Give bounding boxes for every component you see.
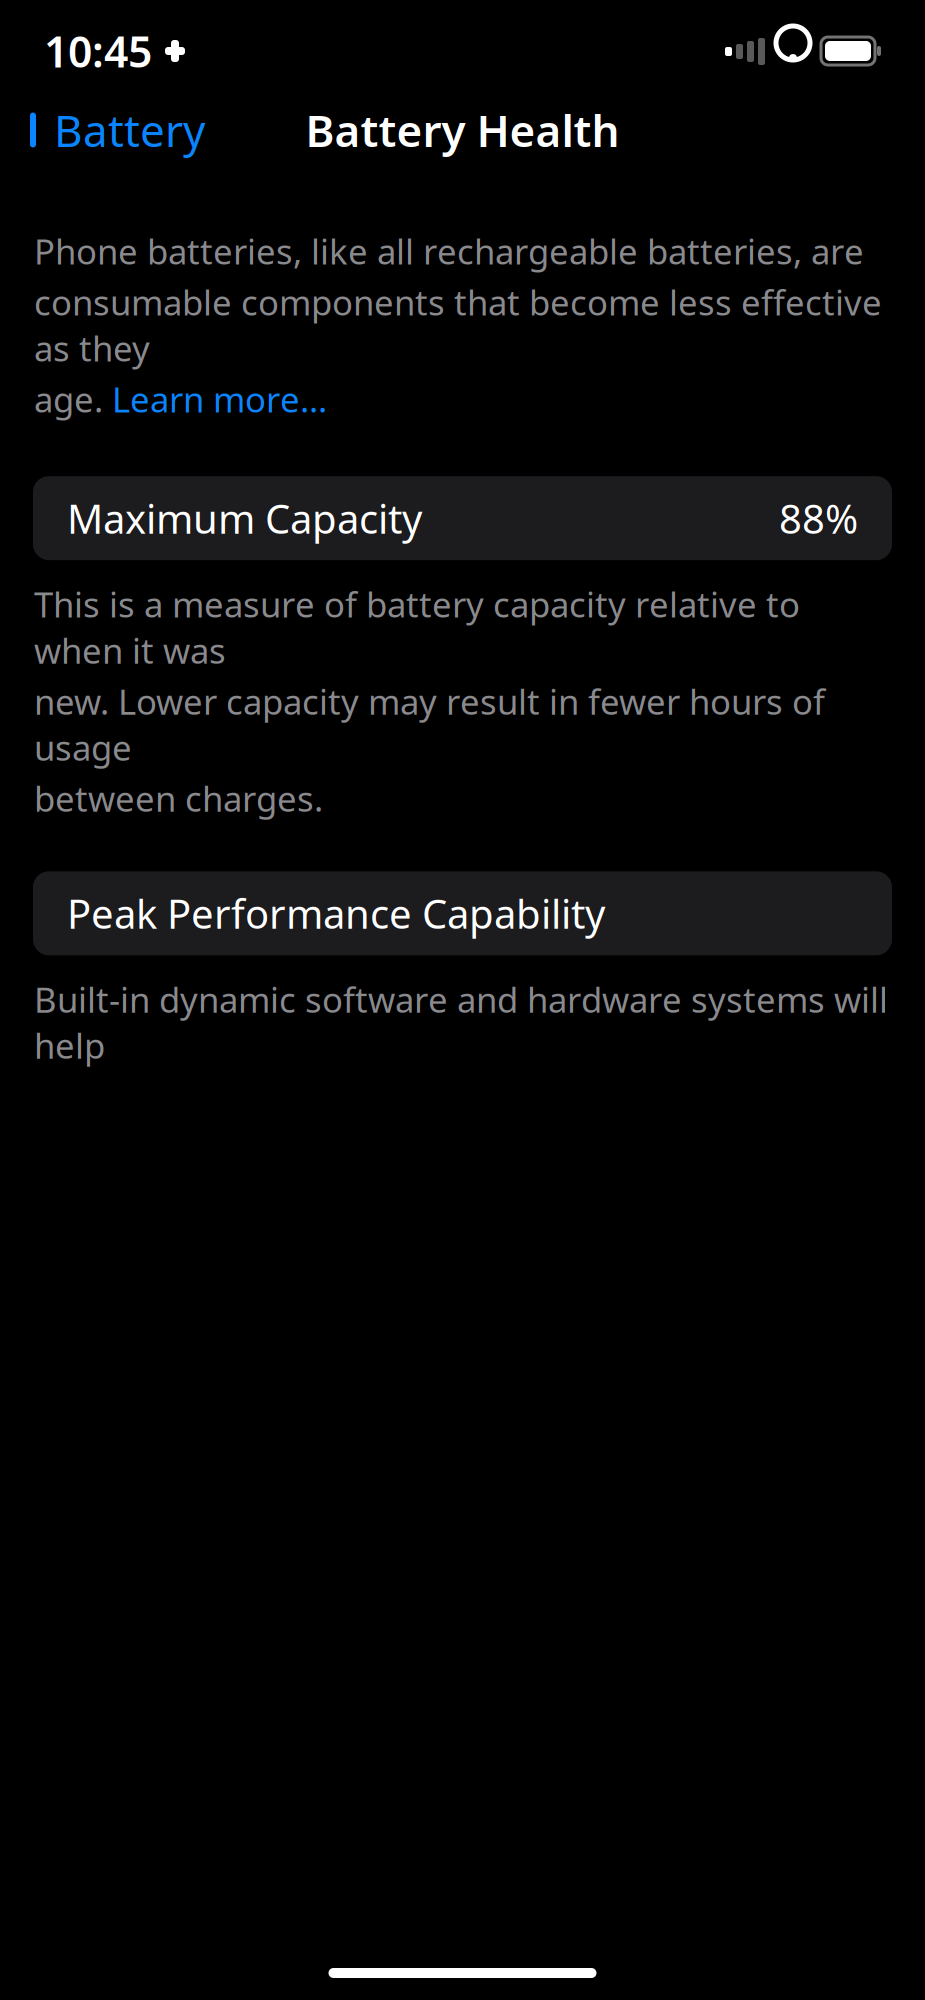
- staticText: 10:45: [44, 23, 152, 79]
- staticText: consumable components that become less e…: [34, 279, 882, 371]
- button[interactable]: Peak Performance Capability: [33, 871, 892, 955]
- staticText: Battery Health: [305, 101, 619, 159]
- staticText: between charges.: [34, 775, 323, 821]
- staticText: This is a measure of battery capacity re…: [34, 581, 800, 673]
- staticText: Maximum Capacity: [67, 492, 422, 545]
- staticText: Phone batteries, like all rechargeable b…: [34, 228, 864, 274]
- button[interactable]: Back to Battery: [0, 93, 205, 167]
- button[interactable]: Learn more...: [112, 376, 327, 422]
- staticText: Learn more...: [112, 376, 327, 422]
- staticText: Built-in dynamic software and hardware s…: [34, 976, 888, 1068]
- button[interactable]: Maximum Capacity: [33, 476, 892, 560]
- staticText: age.: [34, 376, 112, 422]
- staticText: 88%: [779, 492, 858, 545]
- staticText: Battery: [54, 101, 205, 159]
- staticText: Peak Performance Capability: [67, 887, 605, 940]
- staticText: new. Lower capacity may result in fewer …: [34, 678, 825, 770]
